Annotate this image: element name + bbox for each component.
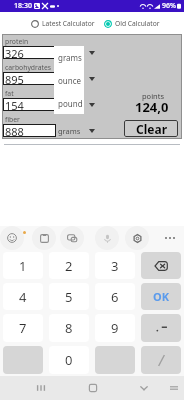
- button[interactable]: Back: [132, 376, 156, 400]
- staticText: 4: [19, 288, 27, 306]
- staticText: pound: [58, 100, 82, 110]
- staticText: 18:30: [14, 1, 32, 11]
- staticText: 7: [19, 319, 27, 337]
- staticText: 1: [19, 257, 27, 275]
- button[interactable]: 8: [49, 314, 89, 342]
- staticText: 96%: [162, 1, 176, 11]
- staticText: 9: [111, 319, 119, 337]
- button[interactable]: 2: [49, 252, 89, 279]
- button[interactable]: Select unit for protein: [83, 44, 101, 62]
- button[interactable]: Recents: [29, 376, 53, 400]
- staticText: 888: [5, 124, 24, 137]
- button[interactable]: [141, 314, 181, 342]
- button[interactable]: Clear: [124, 120, 178, 137]
- button[interactable]: ounce: [54, 69, 84, 92]
- button[interactable]: OK: [141, 283, 181, 310]
- staticText: Clear: [136, 121, 167, 137]
- button[interactable]: 895: [3, 72, 56, 85]
- button[interactable]: 5: [49, 283, 89, 310]
- button[interactable]: Hide keyboard: [162, 376, 184, 400]
- staticText: grams: [58, 48, 81, 58]
- staticText: 6: [111, 288, 119, 306]
- button[interactable]: [141, 346, 181, 374]
- button[interactable]: 4: [3, 283, 43, 310]
- staticText: fiber: [5, 115, 20, 124]
- button[interactable]: Select unit for fat: [83, 96, 101, 114]
- button[interactable]: Old Calculator: [104, 15, 160, 32]
- button[interactable]: Settings: [125, 226, 149, 250]
- button[interactable]: More options: [158, 226, 182, 250]
- button[interactable]: 9: [95, 314, 135, 342]
- staticText: carbohydrates: [5, 63, 52, 72]
- button[interactable]: 3: [95, 252, 135, 279]
- staticText: 8: [65, 319, 73, 337]
- button[interactable]: Voice input: [95, 226, 119, 250]
- staticText: 326: [5, 46, 24, 59]
- button[interactable]: Emoji: [0, 226, 24, 250]
- staticText: grams: [58, 52, 82, 63]
- button[interactable]: pound: [54, 92, 84, 114]
- staticText: 895: [5, 72, 24, 85]
- button[interactable]: Home: [81, 376, 105, 400]
- staticText: grams: [58, 126, 81, 136]
- staticText: Old Calculator: [115, 19, 160, 28]
- staticText: Latest Calculator: [42, 19, 95, 28]
- staticText: ounce: [58, 74, 80, 84]
- button[interactable]: 154: [3, 98, 56, 111]
- button[interactable]: Clipboard: [32, 226, 56, 250]
- staticText: OK: [153, 289, 170, 304]
- button[interactable]: Delete: [141, 252, 181, 279]
- staticText: fat: [5, 89, 14, 98]
- staticText: pound: [58, 98, 83, 109]
- staticText: 2: [65, 257, 73, 275]
- button[interactable]: Stickers: [60, 226, 84, 250]
- button[interactable]: 326: [3, 46, 56, 59]
- button[interactable]: 7: [3, 314, 43, 342]
- staticText: 154: [5, 98, 24, 111]
- staticText: protein: [5, 37, 29, 46]
- staticText: ounce: [58, 75, 82, 86]
- staticText: 0: [65, 351, 73, 369]
- button[interactable]: Select unit for carbohydrates: [83, 70, 101, 88]
- staticText: 5: [65, 288, 73, 306]
- button[interactable]: 888: [3, 124, 56, 137]
- button[interactable]: grams: [54, 46, 84, 69]
- button[interactable]: 0: [49, 346, 89, 374]
- button[interactable]: 1: [3, 252, 43, 279]
- staticText: 124,0: [135, 98, 169, 116]
- staticText: points: [142, 91, 165, 101]
- button[interactable]: 6: [95, 283, 135, 310]
- button[interactable]: Latest Calculator: [31, 15, 95, 32]
- staticText: 3: [111, 257, 119, 275]
- button[interactable]: Select unit for fiber: [83, 122, 101, 140]
